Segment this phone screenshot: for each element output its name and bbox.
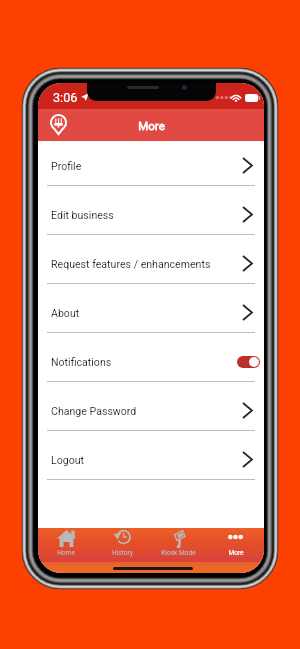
staticText: Request features / enhancements (51, 258, 211, 270)
staticText: Change Password (51, 405, 137, 417)
button[interactable]: Notifications toggle (237, 356, 260, 368)
button[interactable]: Request features / enhancements (38, 235, 264, 284)
staticText: Notifications (51, 356, 112, 368)
staticText: Home (57, 549, 75, 557)
staticText: Profile (51, 160, 82, 172)
button[interactable]: Logout (38, 431, 264, 480)
button[interactable]: Change Password (38, 382, 264, 431)
button[interactable]: Edit business (38, 186, 264, 235)
button[interactable]: Profile (38, 141, 264, 186)
button[interactable]: Kiosk Mode (150, 528, 207, 560)
staticText: Logout (51, 454, 85, 466)
button[interactable]: About (38, 284, 264, 333)
staticText: Kiosk Mode (161, 549, 196, 557)
staticText: Edit business (51, 209, 114, 221)
button[interactable]: Home (38, 528, 94, 560)
staticText: History (112, 549, 133, 557)
staticText: More (138, 119, 165, 132)
button[interactable]: More (207, 528, 264, 560)
button[interactable]: Menu (46, 111, 70, 137)
button[interactable]: History (94, 528, 150, 560)
staticText: 3:06 (53, 90, 78, 105)
staticText: More (228, 549, 244, 557)
staticText: About (51, 307, 80, 319)
